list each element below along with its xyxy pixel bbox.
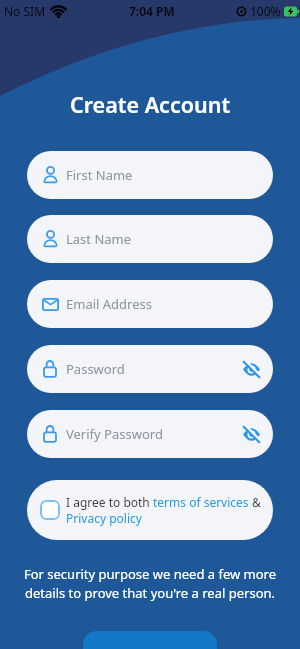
button[interactable]: Privacy policy bbox=[66, 510, 142, 526]
button[interactable] bbox=[240, 358, 262, 380]
button[interactable]: I agree to both bbox=[27, 480, 273, 540]
staticText: First Name bbox=[66, 166, 133, 184]
button[interactable]: terms of services bbox=[153, 494, 249, 510]
staticText: I agree to both bbox=[66, 494, 153, 510]
button[interactable] bbox=[240, 423, 262, 445]
button[interactable] bbox=[83, 631, 217, 649]
staticText: 100% bbox=[250, 3, 281, 19]
staticText: For security purpose we need a few more … bbox=[0, 565, 300, 602]
button[interactable]: Last Name bbox=[27, 215, 273, 263]
staticText: 7:04 PM bbox=[129, 3, 175, 19]
staticText: Create Account bbox=[70, 90, 231, 119]
staticText: & bbox=[249, 494, 261, 510]
button[interactable] bbox=[40, 500, 60, 520]
staticText: Last Name bbox=[66, 230, 132, 248]
staticText: No SIM bbox=[4, 3, 46, 19]
staticText: Password bbox=[66, 360, 125, 378]
button[interactable]: First Name bbox=[27, 151, 273, 199]
staticText: Email Address bbox=[66, 295, 152, 313]
button[interactable]: Password bbox=[27, 345, 273, 393]
button[interactable]: Email Address bbox=[27, 280, 273, 328]
staticText: Verify Password bbox=[66, 425, 163, 443]
button[interactable]: Verify Password bbox=[27, 410, 273, 458]
